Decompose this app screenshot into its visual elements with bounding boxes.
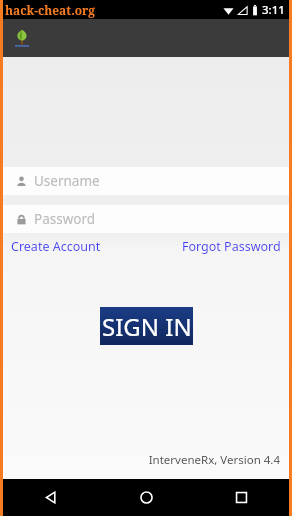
button[interactable]: Recents	[194, 479, 289, 516]
staticText: Username	[34, 172, 100, 190]
button[interactable]: SIGN IN	[100, 307, 193, 345]
button[interactable]: Forgot Password	[182, 236, 281, 257]
button[interactable]: Password	[3, 205, 289, 233]
button[interactable]: Back	[3, 479, 99, 516]
button[interactable]: Create Account	[11, 236, 101, 257]
staticText: InterveneRx, Version 4.4	[3, 452, 280, 468]
staticText: 3:11	[262, 2, 285, 18]
button[interactable]: App logo	[11, 27, 33, 49]
staticText: SIGN IN	[102, 310, 192, 343]
button[interactable]: Username	[3, 167, 289, 195]
staticText: hack-cheat.org	[5, 2, 96, 18]
button[interactable]: Home	[99, 479, 194, 516]
staticText: Password	[34, 210, 96, 228]
